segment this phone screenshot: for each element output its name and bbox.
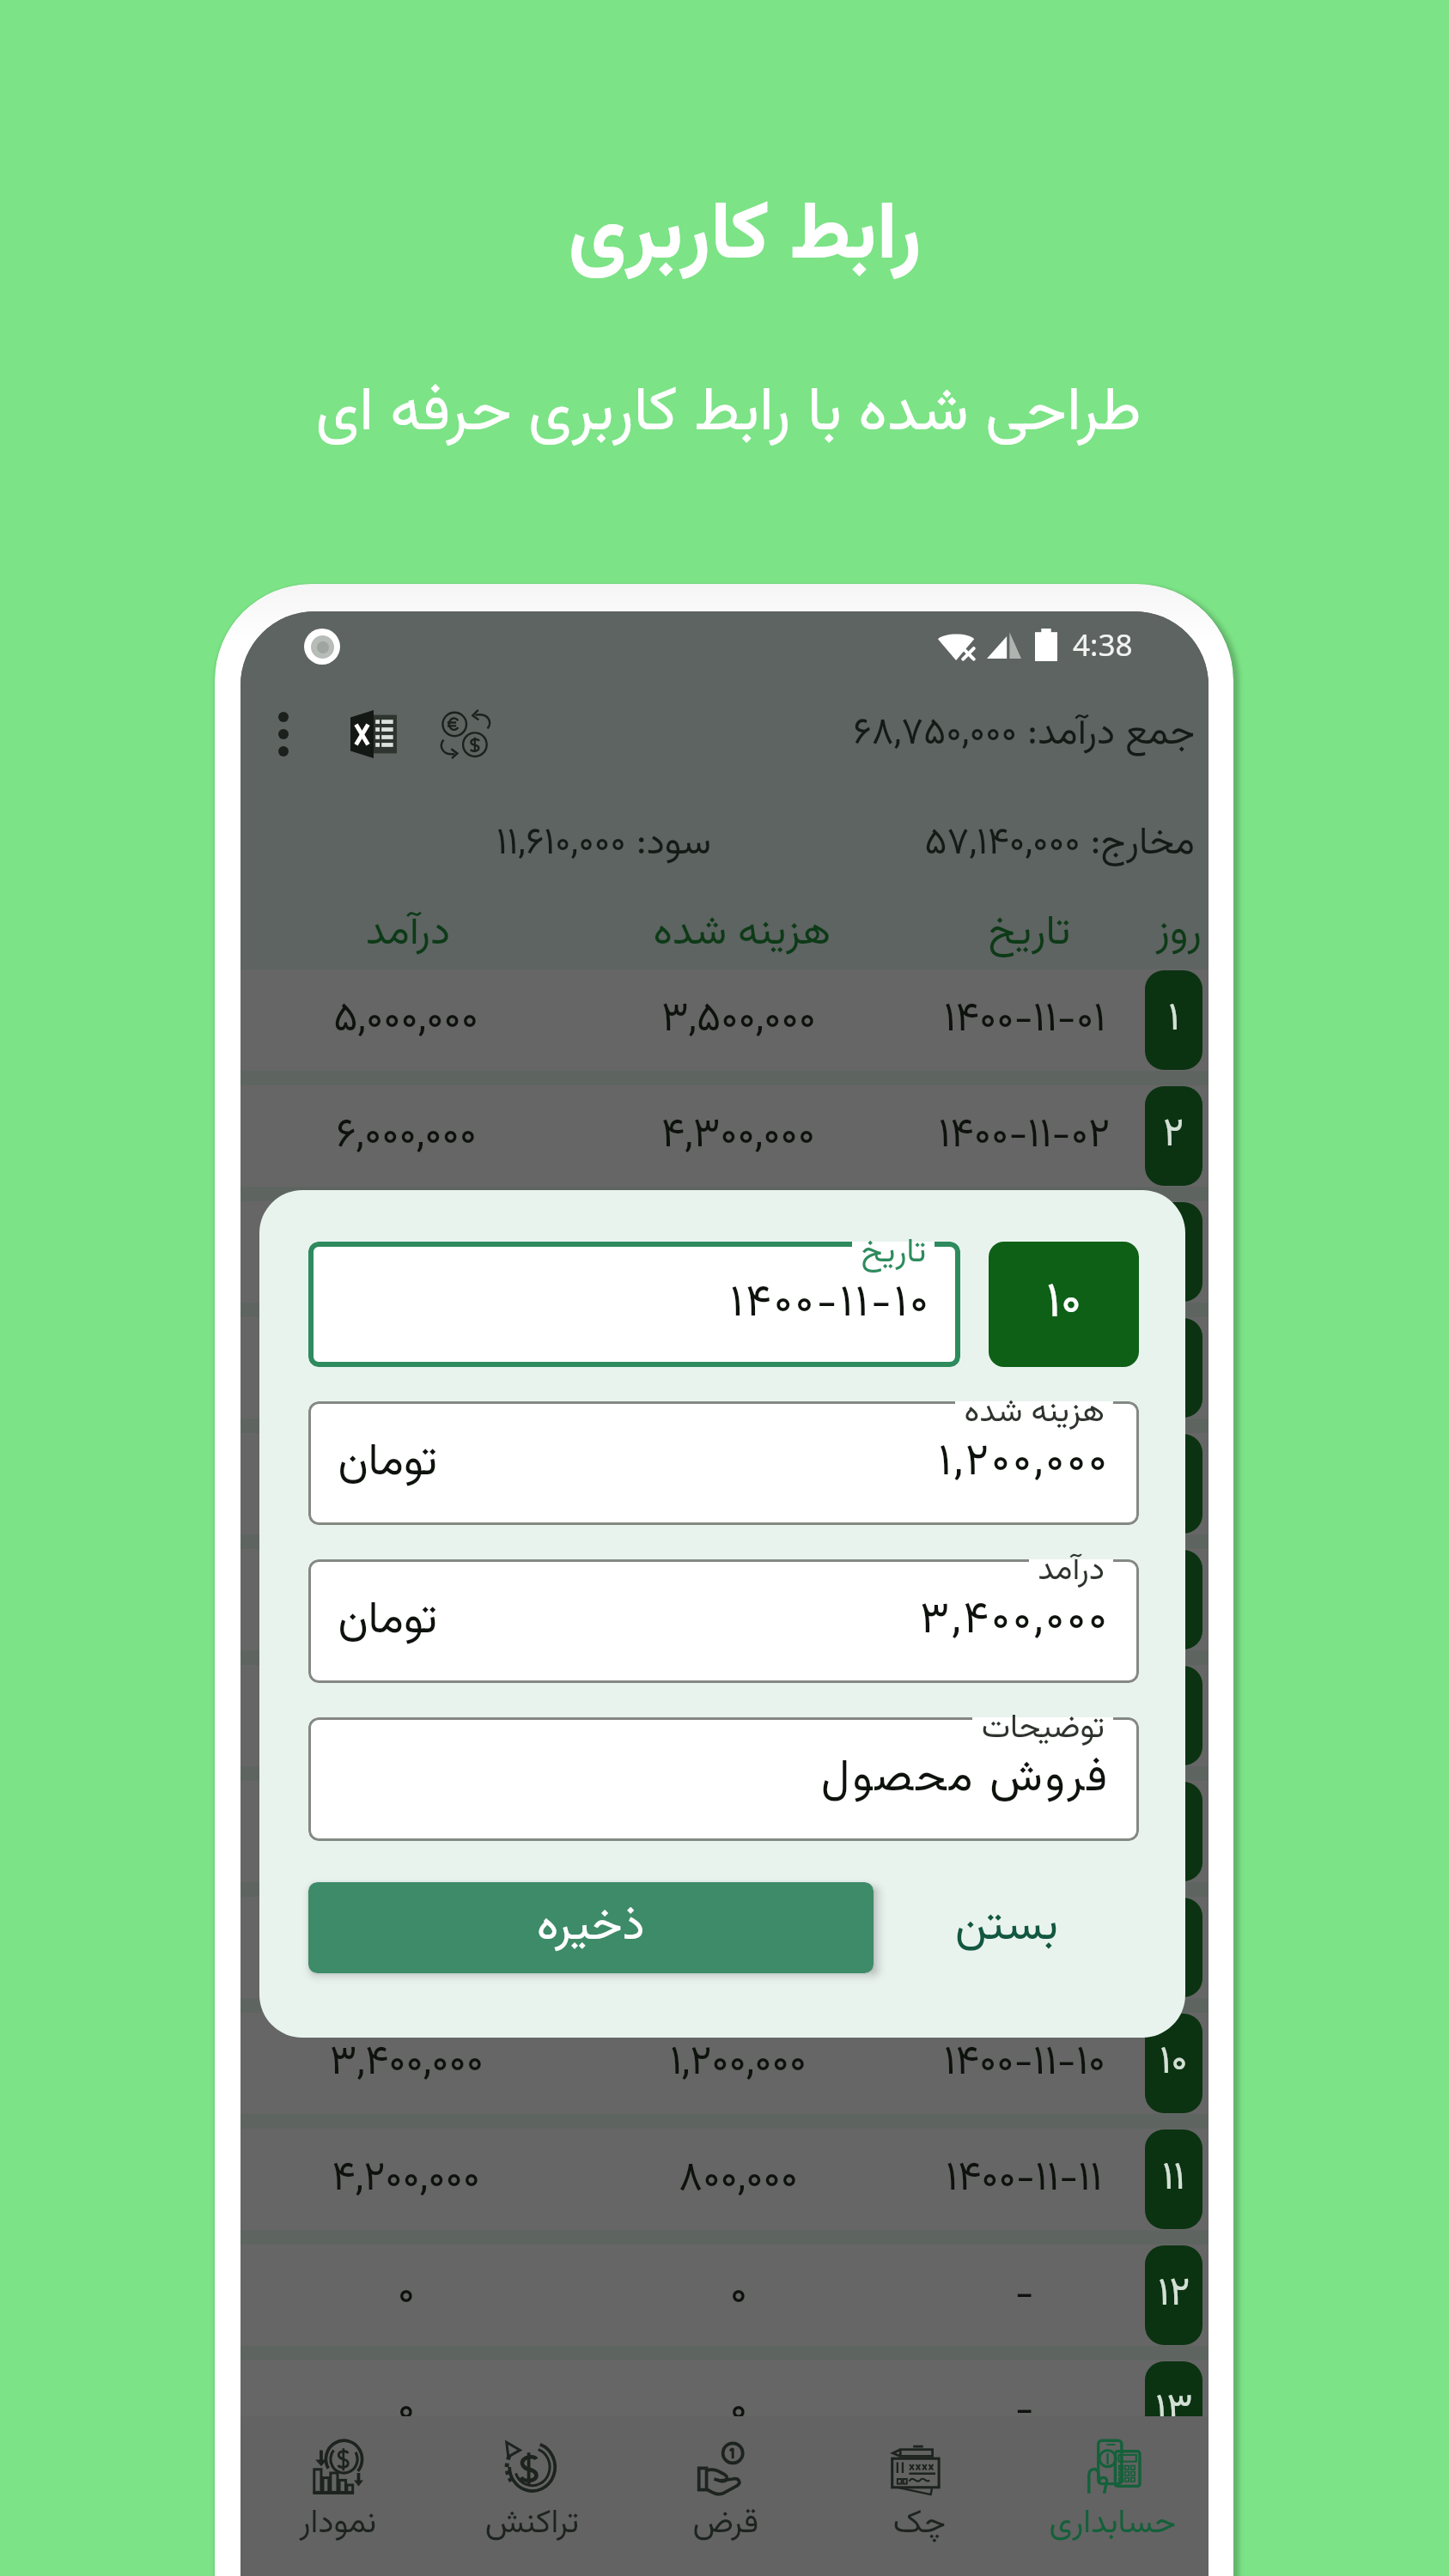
staticText: ۵,۵۰۰,۰۰۰ — [330, 1452, 482, 1516]
staticText: ۱۲ — [1158, 2264, 1190, 2326]
button[interactable]: Export to Excel — [342, 690, 405, 779]
staticText: ذخیره — [537, 1892, 645, 1964]
staticText: چک — [892, 2499, 946, 2549]
staticText: تراکنش — [484, 2499, 579, 2549]
staticText: نمودار — [299, 2499, 376, 2549]
staticText: ۱۴۰۰-۱۱-۰۸ — [937, 1800, 1111, 1864]
staticText: روز — [1155, 902, 1202, 966]
staticText: ۳,۸۰۰,۰۰۰ — [328, 1220, 484, 1285]
staticText: ۱۴۰۰-۱۱-۰۶ — [939, 1568, 1109, 1632]
staticText: ۱۴۰۰-۱۱-۱۱ — [946, 2148, 1102, 2212]
staticText: سود: ۱۱,۶۱۰,۰۰۰ — [496, 815, 711, 874]
staticText: ۱۴۰۰-۱۱-۰۷ — [937, 1684, 1111, 1748]
staticText: ۲,۱۰۰,۰۰۰ — [669, 1220, 807, 1285]
button[interactable]: ۴,۶۰۰,۰۰۰ — [240, 1781, 1209, 1882]
staticText: جمع درآمد: ۶۸,۷۵۰,۰۰۰ — [853, 705, 1195, 764]
staticText: بستن — [955, 1892, 1058, 1964]
button[interactable]: More options — [258, 690, 309, 779]
button[interactable]: ۵,۰۰۰,۰۰۰ — [240, 969, 1209, 1071]
staticText: - — [1014, 2379, 1034, 2444]
staticText: مخارج: ۵۷,۱۴۰,۰۰۰ — [924, 815, 1195, 874]
staticText: ۰ — [397, 2379, 415, 2444]
staticText: ۱۴۰۰-۱۱-۱۰ — [729, 1270, 931, 1340]
staticText: ۴,۲۰۰,۰۰۰ — [332, 2148, 480, 2212]
staticText: قرض — [692, 2499, 758, 2549]
staticText: ۱۴۰۰-۱۱-۰۹ — [939, 1916, 1109, 1980]
staticText: ۱۴۰۰-۱۱-۰۲ — [938, 1104, 1110, 1169]
staticText: ۸۰۰,۰۰۰ — [679, 2148, 798, 2212]
staticText: ۱۴ — [1157, 2495, 1191, 2557]
button[interactable]: ۳,۸۰۰,۰۰۰ — [240, 1201, 1209, 1303]
button[interactable]: ۰ — [240, 2360, 1209, 2462]
staticText: ۱,۲۰۰,۰۰۰ — [938, 1429, 1110, 1498]
staticText: 4:38 — [1073, 624, 1133, 665]
button[interactable]: ۰ — [240, 2245, 1209, 2346]
staticText: ۱۴۰۰-۱۱-۰۵ — [937, 1452, 1111, 1516]
button[interactable]: حسابداری — [1015, 2416, 1209, 2576]
staticText: ۴,۶۰۰,۰۰۰ — [332, 1800, 479, 1864]
button[interactable]: تراکنش — [435, 2416, 629, 2576]
button[interactable]: نمودار — [240, 2416, 435, 2576]
button[interactable]: چک — [822, 2416, 1015, 2576]
staticText: طراحی شده با رابط کاربری حرفه ای — [315, 366, 1142, 463]
staticText: ۱۰ — [1046, 1266, 1082, 1344]
staticText: ۳,۱۰۰,۰۰۰ — [667, 1684, 809, 1748]
button[interactable]: بستن — [874, 1882, 1139, 1973]
staticText: ۵,۲۰۰,۰۰۰ — [332, 1684, 481, 1748]
staticText: درآمد — [365, 902, 450, 966]
staticText: ۴,۹۰۰,۰۰۰ — [332, 1568, 479, 1632]
staticText: ۳,۴۰۰,۰۰۰ — [919, 1587, 1110, 1656]
staticText: ۱۴۰۰-۱۱-۰۴ — [937, 1336, 1111, 1400]
button[interactable]: ۰ — [240, 2476, 1209, 2576]
staticText: حسابداری — [1049, 2499, 1176, 2549]
staticText: هزینه شده — [653, 902, 831, 966]
button[interactable]: ۴,۲۰۰,۰۰۰ — [240, 2129, 1209, 2230]
staticText: ۱۴۰۰-۱۱-۰۳ — [935, 1220, 1113, 1285]
staticText: - — [1014, 2263, 1034, 2328]
staticText: ۱,۷۰۰,۰۰۰ — [668, 1916, 808, 1980]
staticText: ۰ — [729, 2379, 747, 2444]
staticText: فروش محصول — [821, 1745, 1110, 1814]
button[interactable]: ۵,۵۰۰,۰۰۰ — [240, 1433, 1209, 1534]
button[interactable]: ۶,۰۰۰,۰۰۰ — [240, 1085, 1209, 1187]
staticText: تاریخ — [861, 1228, 926, 1279]
staticText: تاریخ — [988, 902, 1070, 966]
staticText: ۱,۲۰۰,۰۰۰ — [669, 2032, 807, 2096]
staticText: توضیحات — [981, 1704, 1105, 1754]
button[interactable]: ۴,۱۰۰,۰۰۰ — [240, 1317, 1209, 1419]
button[interactable]: ۵,۲۰۰,۰۰۰ — [240, 1665, 1209, 1766]
button[interactable]: ۳,۴۰۰,۰۰۰ — [240, 2013, 1209, 2114]
staticText: ۳,۳۰۰,۰۰۰ — [327, 1916, 485, 1980]
staticText: ۵,۰۰۰,۰۰۰ — [333, 988, 478, 1053]
button[interactable]: قرض — [629, 2416, 822, 2576]
button[interactable]: ذخیره — [308, 1882, 874, 1973]
staticText: ۶,۰۰۰,۰۰۰ — [336, 1104, 477, 1169]
staticText: تومان — [338, 1429, 437, 1498]
staticText: ۳,۴۰۰,۰۰۰ — [329, 2032, 484, 2096]
staticText: ۱۴۰۰-۱۱-۰۱ — [943, 988, 1105, 1053]
staticText: درآمد — [1038, 1546, 1105, 1596]
staticText: تومان — [338, 1587, 437, 1656]
staticText: ۰ — [397, 2263, 415, 2328]
staticText: هزینه شده — [964, 1388, 1105, 1438]
button[interactable]: ۱۰ — [989, 1242, 1139, 1367]
staticText: ۳,۵۰۰,۰۰۰ — [661, 988, 816, 1053]
staticText: ۱۱ — [1162, 2148, 1185, 2210]
button[interactable]: Currency exchange — [429, 690, 502, 779]
staticText: ۲ — [1163, 1105, 1184, 1167]
staticText: رابط کاربری — [568, 175, 922, 301]
staticText: ۲,۴۰۰,۰۰۰ — [664, 1800, 813, 1864]
staticText: ۱ — [1168, 989, 1180, 1051]
button[interactable]: ۳,۳۰۰,۰۰۰ — [240, 1897, 1209, 1998]
staticText: ۰ — [729, 2263, 747, 2328]
button[interactable]: ۴,۹۰۰,۰۰۰ — [240, 1549, 1209, 1650]
